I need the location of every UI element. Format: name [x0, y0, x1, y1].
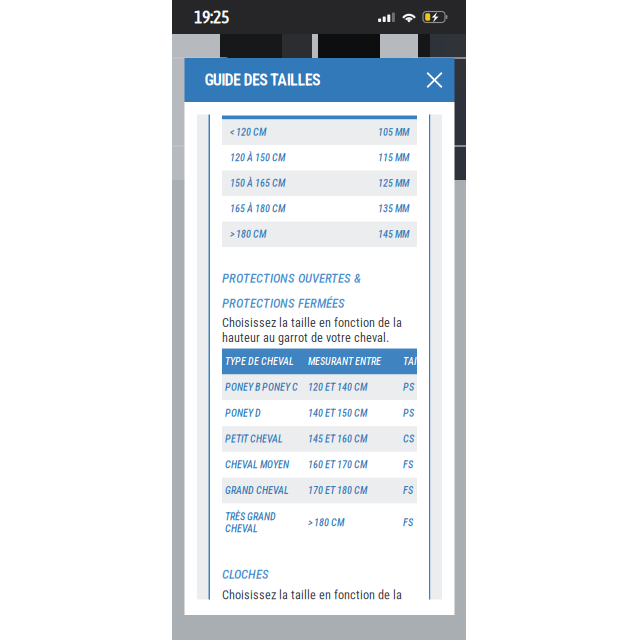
staticText: PONEY B PONEY C: [225, 381, 298, 393]
staticText: PROTECTIONS FERMÉES: [222, 296, 345, 311]
staticText: TYPE DE CHEVAL: [225, 356, 294, 367]
staticText: FS: [403, 517, 413, 529]
staticText: PS: [403, 407, 414, 419]
staticText: CLOCHES: [222, 567, 269, 582]
staticText: PONEY D: [225, 407, 261, 419]
staticText: PS: [403, 381, 414, 393]
staticText: FS: [403, 485, 413, 497]
staticText: < 120 CM: [230, 126, 266, 138]
staticText: 165 À 180 CM: [230, 203, 285, 215]
staticText: PROTECTIONS OUVERTES &: [222, 271, 361, 286]
staticText: hauteur au garrot de votre cheval.: [222, 330, 389, 345]
staticText: 125 MM: [378, 177, 409, 189]
staticText: 120 À 150 CM: [230, 152, 285, 164]
staticText: 120 ET 140 CM: [308, 381, 367, 393]
staticText: Choisissez la taille en fonction de la: [222, 315, 402, 330]
staticText: 135 MM: [378, 203, 409, 215]
staticText: 145 MM: [378, 228, 409, 240]
staticText: 150 À 165 CM: [230, 177, 285, 189]
button[interactable]: Fermer: [414, 58, 454, 102]
staticText: FS: [403, 459, 413, 471]
staticText: Choisissez la taille en fonction de la: [222, 588, 402, 602]
staticText: MESURANT ENTRE: [308, 356, 381, 367]
staticText: CS: [403, 433, 414, 445]
staticText: GUIDE DES TAILLES: [204, 71, 321, 89]
staticText: CHEVAL MOYEN: [225, 459, 289, 471]
staticText: PETIT CHEVAL: [225, 433, 283, 445]
staticText: 160 ET 170 CM: [308, 459, 367, 471]
staticText: > 180 CM: [230, 228, 266, 240]
staticText: 19:25: [194, 7, 229, 27]
staticText: 105 MM: [378, 126, 409, 138]
staticText: 145 ET 160 CM: [308, 433, 367, 445]
staticText: TAILLE: [403, 356, 432, 367]
staticText: 170 ET 180 CM: [308, 485, 367, 497]
staticText: 115 MM: [378, 152, 409, 164]
staticText: > 180 CM: [308, 517, 344, 529]
staticText: TRÈS GRAND CHEVAL: [225, 511, 276, 535]
staticText: 140 ET 150 CM: [308, 407, 367, 419]
staticText: GRAND CHEVAL: [225, 485, 289, 497]
